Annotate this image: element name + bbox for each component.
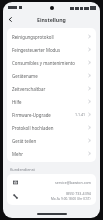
staticText: Einstellung (37, 16, 66, 23)
staticText: Zeitverschaltbar (12, 86, 88, 92)
staticText: (855) 733-4394 (66, 191, 91, 196)
button[interactable]: Firmware-Upgrade (7, 108, 96, 121)
button[interactable]: (855) 733-4394 (7, 188, 96, 203)
staticText: 1.1.41 (75, 112, 86, 117)
staticText: Mehr (12, 151, 88, 157)
button[interactable]: Back (5, 14, 15, 24)
button[interactable]: Protokoll hochladen (7, 121, 96, 134)
button[interactable]: Feingesteuerter Modus (7, 43, 96, 56)
button[interactable]: Gerätename (7, 69, 96, 82)
staticText: Gerät teilen (12, 138, 88, 144)
staticText: Gerätename (12, 73, 88, 79)
button[interactable]: Zeitverschaltbar (7, 82, 96, 95)
staticText: Hilfe (12, 99, 88, 105)
staticText: Feingesteuerter Modus (12, 47, 88, 53)
button[interactable]: Consumibles y mantenimiento (7, 56, 96, 69)
button[interactable]: service@bawton.com (7, 176, 96, 188)
staticText: Consumibles y mantenimiento (12, 60, 88, 66)
staticText: service@bawton.com (55, 180, 91, 185)
button[interactable]: Gerät teilen (7, 134, 96, 147)
button[interactable]: Hilfe (7, 95, 96, 108)
staticText: Mo-Su 9:00-18:00 Uhr (CST) (51, 197, 91, 201)
staticText: Reinigungsprotokoll (12, 34, 88, 40)
staticText: Firmware-Upgrade (12, 112, 75, 118)
button[interactable]: Mehr (7, 147, 96, 160)
button[interactable]: Reinigungsprotokoll (7, 30, 96, 43)
staticText: Protokoll hochladen (12, 125, 88, 131)
staticText: Kundendienst (10, 167, 35, 172)
